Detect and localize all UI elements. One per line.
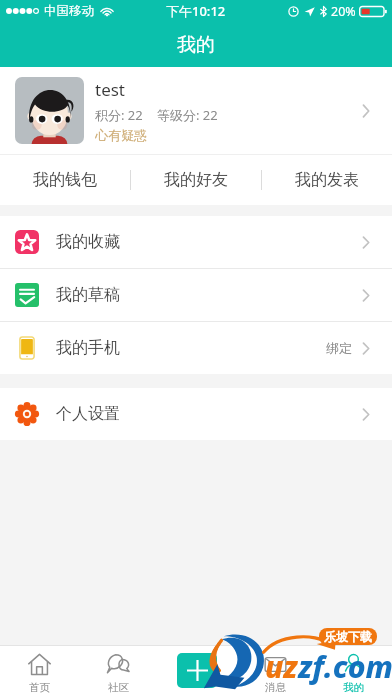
staticText: 个人设置 [56,404,120,424]
staticText: 我的收藏 [56,232,120,252]
staticText: 社区 [108,681,129,694]
staticText: 我的草稿 [56,285,120,305]
staticText: zf [298,646,325,687]
staticText: 20% [331,3,356,20]
staticText: 下午10:12 [166,2,226,20]
button[interactable]: 我的钱包 [0,155,130,205]
button[interactable]: 我的发表 [262,155,392,205]
button[interactable]: 我的收藏 [0,216,392,268]
button[interactable]: 首页 [0,646,79,696]
button[interactable]: 我的 [314,646,392,696]
staticText: 我的 [177,33,215,57]
staticText: 我的发表 [295,170,359,190]
staticText: 首页 [29,681,50,694]
button[interactable]: 我的好友 [131,155,261,205]
staticText: .com [324,646,392,687]
button[interactable]: 个人设置 [0,388,392,440]
staticText: test [95,78,126,101]
staticText: 我的手机 [56,338,120,358]
staticText: 我的 [343,681,364,694]
staticText: 消息 [265,681,286,694]
staticText: 心有疑惑 [95,127,147,143]
button[interactable]: 我的手机 [0,322,392,374]
button[interactable]: Add post [177,653,217,688]
button[interactable]: 我的草稿 [0,269,392,321]
staticText: 中国移动 [44,3,94,19]
staticText: 绑定 [326,340,352,356]
staticText: 我的钱包 [33,170,97,190]
staticText: 我的好友 [164,170,228,190]
button[interactable]: test [0,67,392,154]
button[interactable]: 消息 [236,646,314,696]
staticText: 等级分: 22 [157,106,218,124]
staticText: 积分: 22 [95,106,143,124]
staticText: uz [265,646,298,687]
staticText: 乐坡下载 [324,629,372,644]
button[interactable]: 社区 [79,646,158,696]
